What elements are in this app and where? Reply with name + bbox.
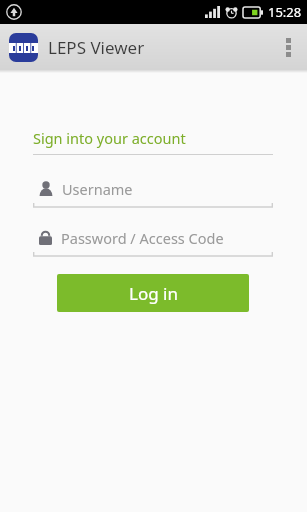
button[interactable]: Log in <box>57 274 249 312</box>
staticText: Password / Access Code <box>61 228 224 248</box>
staticText: Sign into your account <box>33 128 186 148</box>
staticText: Log in <box>129 282 178 305</box>
button[interactable]: More options <box>270 24 307 70</box>
staticText: LEPS Viewer <box>48 36 145 59</box>
staticText: 15:28 <box>268 3 302 21</box>
button[interactable]: Username <box>33 177 273 208</box>
staticText: Username <box>62 179 133 199</box>
button[interactable]: Password / Access Code <box>33 226 273 257</box>
